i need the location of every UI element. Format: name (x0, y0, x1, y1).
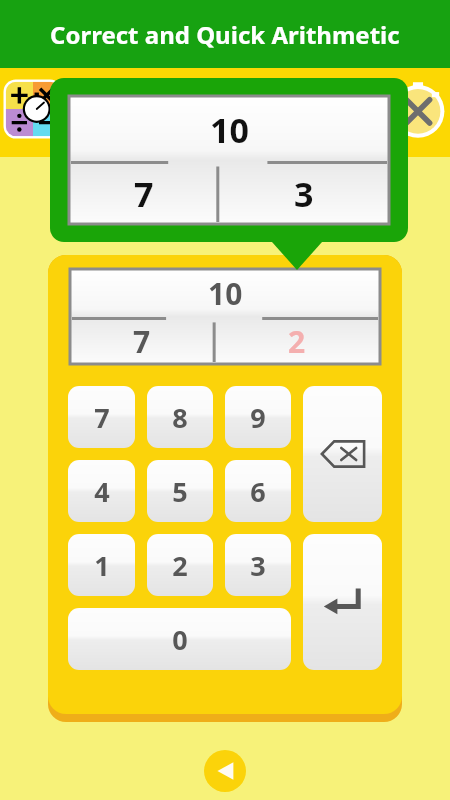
staticText: 10 (210, 107, 249, 153)
staticText: 0 (172, 621, 188, 658)
staticText: 9 (250, 399, 266, 436)
staticText: 2 (172, 547, 188, 584)
button[interactable]: 4 (68, 460, 135, 522)
staticText: 1 (94, 547, 110, 584)
button[interactable]: App icon (2, 78, 64, 140)
button[interactable]: 5 (147, 460, 213, 522)
staticText: 7 (94, 399, 110, 436)
staticText: 2 (288, 321, 306, 362)
button[interactable]: 2 (147, 534, 213, 596)
staticText: 3 (294, 171, 314, 217)
button[interactable]: 10 (70, 269, 380, 364)
staticText: 8 (172, 399, 188, 436)
staticText: 6 (250, 473, 266, 510)
button[interactable]: Backspace (303, 386, 382, 522)
button[interactable]: 6 (225, 460, 291, 522)
button[interactable]: 7 (68, 386, 135, 448)
staticText: 7 (134, 171, 154, 217)
button[interactable]: 1 (68, 534, 135, 596)
button[interactable]: 0 (68, 608, 291, 670)
button[interactable]: Enter (303, 534, 382, 670)
staticText: 10 (208, 273, 243, 314)
staticText: 3 (250, 547, 266, 584)
staticText: Correct and Quick Arithmetic (50, 18, 400, 51)
staticText: 5 (172, 473, 188, 510)
button[interactable]: 3 (225, 534, 291, 596)
staticText: 4 (94, 473, 110, 510)
button[interactable]: Back (204, 750, 246, 792)
button[interactable]: 10 (69, 96, 389, 224)
staticText: 7 (133, 321, 151, 362)
button[interactable]: 8 (147, 386, 213, 448)
button[interactable]: 9 (225, 386, 291, 448)
button[interactable]: Close timer (390, 80, 446, 136)
